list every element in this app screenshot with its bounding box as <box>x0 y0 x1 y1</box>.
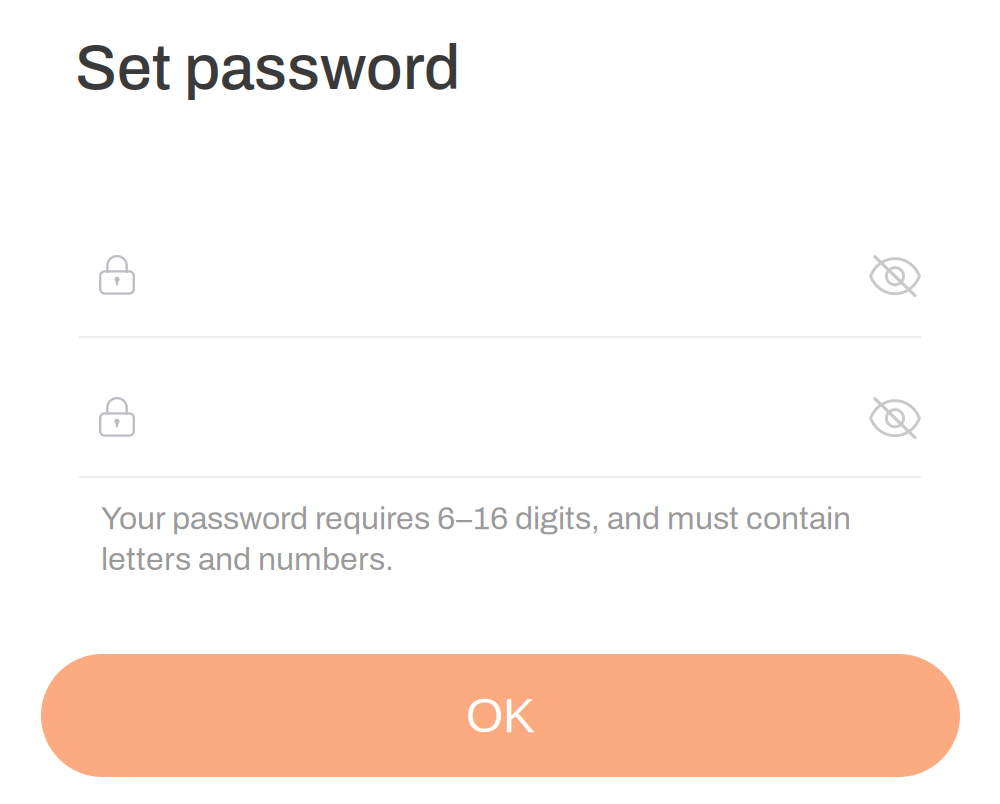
staticText: OK <box>466 689 535 742</box>
button[interactable]: Show Confirm password <box>860 386 930 450</box>
button[interactable]: Confirm password <box>0 387 860 449</box>
staticText: Your password requires 6–16 digits, and … <box>101 501 851 577</box>
button[interactable]: Show Password <box>860 244 930 308</box>
button[interactable]: Password <box>0 245 860 307</box>
button[interactable]: OK <box>41 654 960 777</box>
staticText: Set password <box>75 34 460 102</box>
